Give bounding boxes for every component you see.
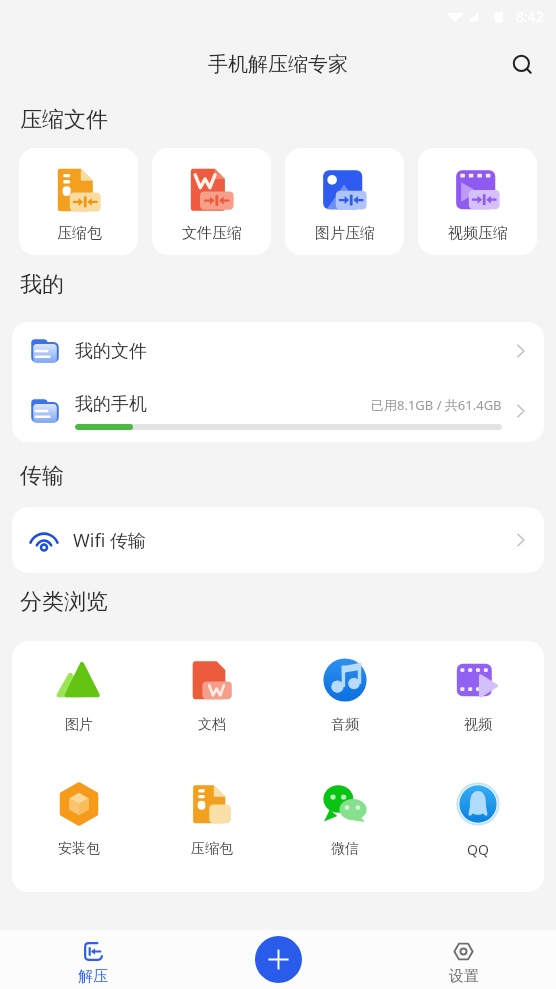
staticText: 解压 xyxy=(78,967,108,986)
button[interactable]: 压缩包 xyxy=(19,148,138,255)
staticText: 文档 xyxy=(198,716,226,734)
staticText: 手机解压缩专家 xyxy=(208,52,348,77)
staticText: 我的 xyxy=(20,271,64,299)
button[interactable]: Wifi 传输 xyxy=(12,507,544,573)
staticText: 视频 xyxy=(464,716,492,734)
staticText: 我的手机 xyxy=(75,393,147,416)
staticText: 文件压缩 xyxy=(182,224,242,243)
button[interactable]: 音频 xyxy=(278,657,411,734)
staticText: 分类浏览 xyxy=(20,588,108,616)
staticText: 安装包 xyxy=(58,840,100,858)
staticText: 设置 xyxy=(449,967,479,986)
button[interactable]: 文件压缩 xyxy=(152,148,271,255)
button[interactable]: 解压 xyxy=(0,930,186,986)
staticText: 微信 xyxy=(331,840,359,858)
button[interactable]: Search xyxy=(500,42,544,86)
button[interactable]: 图片 xyxy=(12,657,145,734)
button[interactable]: 压缩包 xyxy=(145,781,278,858)
staticText: 压缩包 xyxy=(57,224,102,243)
staticText: 图片 xyxy=(65,716,93,734)
staticText: Wifi 传输 xyxy=(73,528,146,553)
staticText: 压缩文件 xyxy=(20,106,108,134)
staticText: 压缩包 xyxy=(191,840,233,858)
staticText: 图片压缩 xyxy=(315,224,375,243)
button[interactable]: Add xyxy=(255,936,302,983)
staticText: 8:42 xyxy=(516,7,544,26)
button[interactable]: 微信 xyxy=(278,781,411,858)
button[interactable]: 文档 xyxy=(145,657,278,734)
staticText: 视频压缩 xyxy=(448,224,508,243)
staticText: 音频 xyxy=(331,716,359,734)
button[interactable]: 我的手机 xyxy=(12,380,544,442)
button[interactable]: 我的文件 xyxy=(12,322,544,380)
button[interactable]: 图片压缩 xyxy=(285,148,404,255)
button[interactable]: 设置 xyxy=(371,930,556,986)
staticText: 已用8.1GB / 共61.4GB xyxy=(371,396,502,414)
button[interactable]: QQ xyxy=(411,781,544,859)
staticText: QQ xyxy=(467,840,489,859)
button[interactable]: 视频 xyxy=(411,657,544,734)
staticText: 传输 xyxy=(20,462,64,490)
staticText: 我的文件 xyxy=(75,340,147,363)
button[interactable]: 视频压缩 xyxy=(418,148,537,255)
button[interactable]: 安装包 xyxy=(12,781,145,858)
